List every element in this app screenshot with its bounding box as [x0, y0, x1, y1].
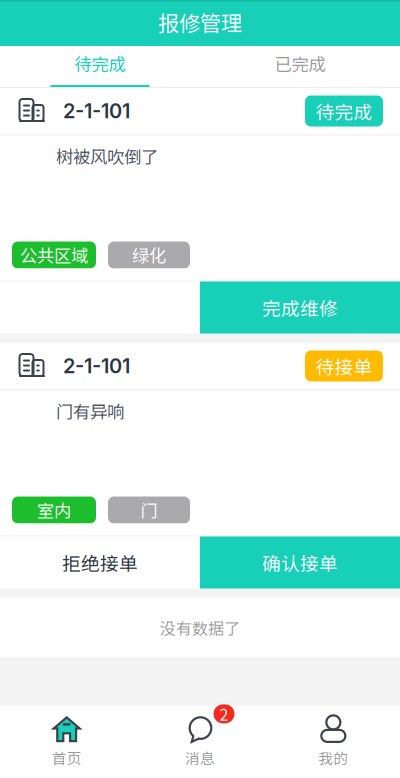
button[interactable]: 完成维修: [200, 281, 400, 333]
button[interactable]: 已完成: [200, 46, 400, 87]
button[interactable]: 首页: [0, 716, 133, 768]
button[interactable]: 待完成: [0, 46, 200, 87]
staticText: 2-1-101: [63, 354, 130, 378]
staticText: 待完成: [74, 51, 125, 76]
staticText: 已完成: [274, 51, 325, 76]
staticText: 首页: [52, 747, 82, 768]
staticText: 我的: [318, 747, 348, 768]
staticText: 拒绝接单: [62, 549, 138, 576]
staticText: 待接单: [315, 352, 372, 379]
staticText: 报修管理: [158, 7, 242, 37]
staticText: 公共区域: [20, 242, 88, 268]
staticText: 消息: [185, 747, 215, 768]
staticText: 2: [219, 702, 228, 725]
staticText: 待完成: [315, 97, 372, 124]
staticText: 2-1-101: [63, 99, 130, 123]
button[interactable]: 待完成: [305, 95, 383, 126]
staticText: 绿化: [132, 242, 166, 268]
staticText: 没有数据了: [160, 616, 240, 639]
button[interactable]: 拒绝接单: [0, 536, 200, 588]
staticText: 树被风吹倒了: [56, 143, 158, 169]
button[interactable]: 我的: [267, 716, 400, 768]
staticText: 完成维修: [262, 294, 338, 321]
button[interactable]: 确认接单: [200, 536, 400, 588]
staticText: 门: [140, 497, 157, 523]
button[interactable]: 待接单: [305, 350, 383, 381]
staticText: 室内: [37, 497, 71, 523]
staticText: 确认接单: [262, 549, 338, 576]
button[interactable]: 2: [133, 716, 267, 768]
staticText: 门有异响: [56, 398, 124, 424]
